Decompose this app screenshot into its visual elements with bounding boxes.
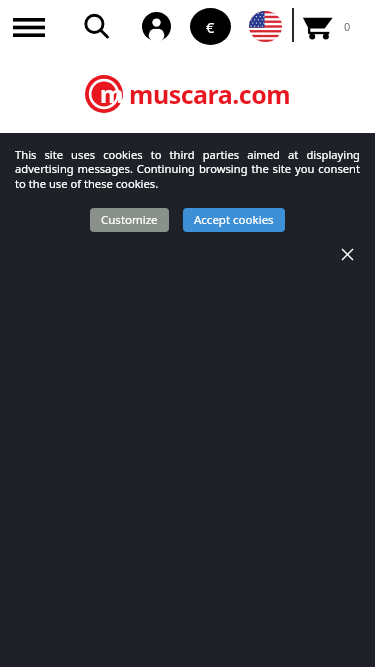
staticText: € [206, 17, 215, 37]
button[interactable]: Currency Euro [190, 8, 231, 45]
button[interactable]: Close [335, 242, 359, 266]
button[interactable]: Search [76, 6, 118, 48]
button[interactable]: Customize [90, 208, 169, 232]
button[interactable]: Cart [298, 8, 336, 44]
staticText: Accept cookies [194, 212, 274, 228]
staticText: muscara.com [129, 77, 291, 111]
button[interactable]: Accept cookies [183, 208, 285, 232]
button[interactable]: Menu [6, 9, 52, 45]
button[interactable]: Account [139, 9, 173, 43]
staticText: 0 [344, 19, 351, 34]
staticText: This site uses cookies to third parties … [15, 147, 360, 192]
staticText: m [100, 77, 124, 110]
staticText: Customize [101, 212, 158, 228]
button[interactable]: Language United States [248, 10, 282, 42]
